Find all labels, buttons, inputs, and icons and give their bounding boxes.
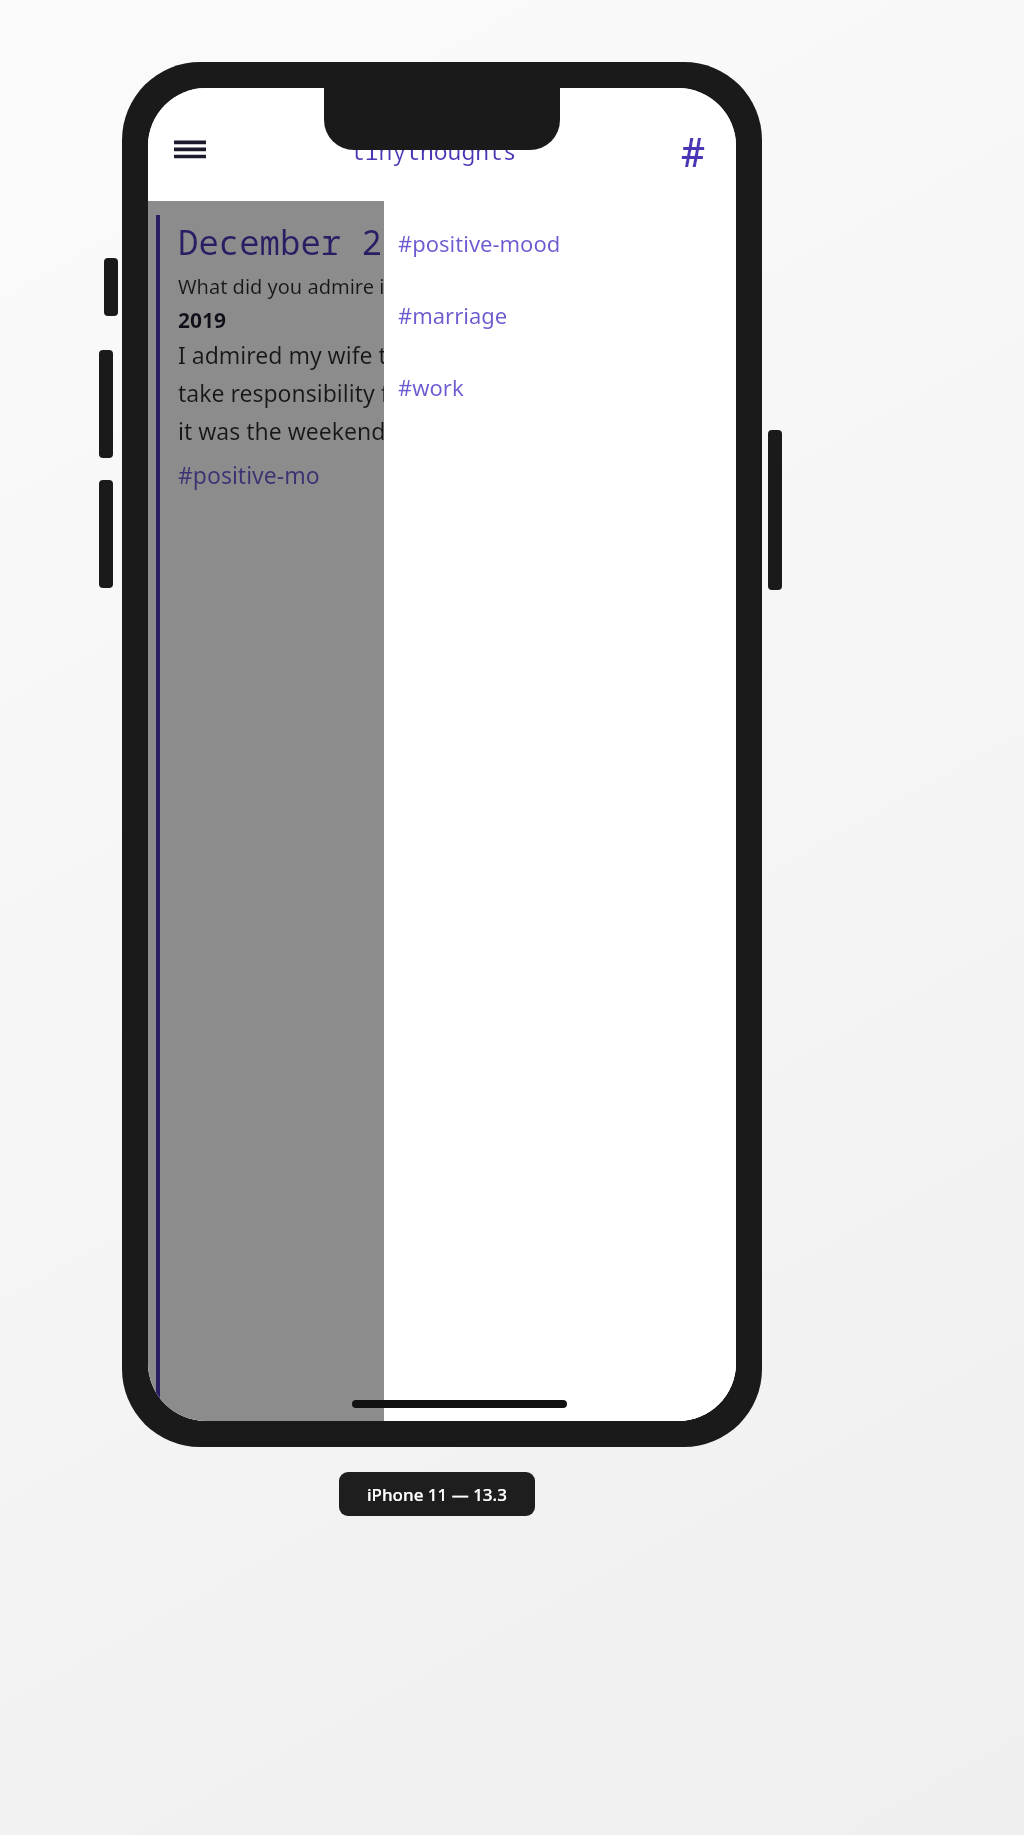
staticText: tinythoughts — [351, 135, 517, 166]
button[interactable]: Open menu — [162, 123, 218, 179]
button[interactable]: Tags — [664, 122, 722, 180]
staticText: it was the weekend and sh — [178, 415, 464, 446]
button[interactable] — [148, 201, 384, 1421]
staticText: 2019 — [178, 306, 227, 335]
staticText: I admired my wife that she — [178, 339, 467, 370]
button[interactable]: December 29 — [148, 201, 736, 1421]
staticText: iPhone 11 — 13.3 — [367, 1483, 507, 1506]
staticText: December 29 — [178, 219, 403, 265]
staticText: #positive-mood — [398, 228, 561, 258]
button[interactable]: #positive-mood — [384, 226, 736, 260]
staticText: take responsibility for the — [178, 377, 454, 408]
button[interactable]: #work — [384, 370, 736, 404]
staticText: # — [681, 124, 705, 178]
button[interactable]: #marriage — [384, 298, 736, 332]
staticText: #work — [398, 372, 464, 402]
staticText: #marriage — [398, 300, 508, 330]
staticText: #positive-mo — [178, 459, 320, 490]
staticText: What did you admire in some — [178, 273, 454, 300]
